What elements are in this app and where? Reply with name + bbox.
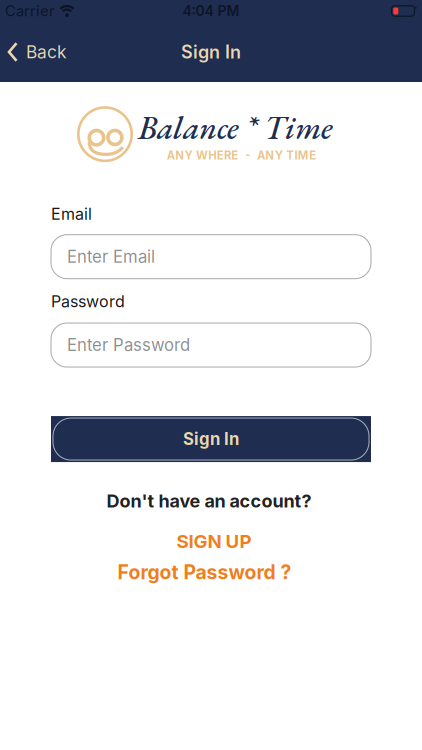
button[interactable]: Enter Email [51, 235, 371, 279]
staticText: Password [51, 292, 125, 311]
staticText: SIGN UP [176, 530, 251, 552]
staticText: Sign In [181, 41, 241, 63]
button[interactable]: SIGN UP [176, 530, 251, 552]
button[interactable]: Enter Password [51, 323, 371, 367]
staticText: Carrier [5, 2, 55, 20]
staticText: Sign In [183, 429, 239, 449]
staticText: Don't have an account? [106, 490, 311, 512]
staticText: Back [26, 41, 67, 62]
button[interactable]: Sign In [51, 416, 371, 462]
staticText: Balance * Time [138, 106, 333, 149]
staticText: Enter Password [67, 335, 190, 355]
button[interactable]: Forgot Password ? [117, 560, 291, 584]
staticText: Enter Email [67, 247, 155, 267]
staticText: Forgot Password ? [117, 560, 291, 584]
button[interactable]: Back [7, 41, 67, 62]
staticText: 4:04 PM [182, 2, 239, 19]
staticText: Email [51, 204, 92, 224]
staticText: ANY WHERE - ANY TIME [167, 149, 316, 162]
